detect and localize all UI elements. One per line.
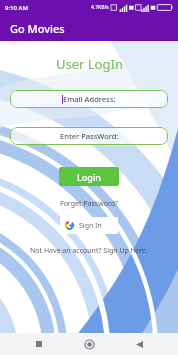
- button[interactable]: Recent apps: [28, 333, 50, 355]
- staticText: Not Have an account? Sign Up here.: [30, 246, 148, 256]
- staticText: Sign In: [79, 221, 102, 231]
- staticText: Go Movies: [10, 21, 65, 36]
- staticText: 9:10 AM: [5, 4, 28, 12]
- button[interactable]: Home: [78, 333, 100, 355]
- staticText: Enter PassWord:: [60, 131, 119, 141]
- staticText: User LogIn: [56, 55, 123, 73]
- staticText: Login: [77, 171, 101, 183]
- button[interactable]: Enter PassWord:: [10, 127, 168, 145]
- staticText: Email Address:: [63, 94, 116, 104]
- button[interactable]: Sign In: [60, 217, 118, 234]
- staticText: Forget Password?: [60, 199, 118, 209]
- button[interactable]: Email Address:: [10, 90, 168, 108]
- button[interactable]: Not Have an account? Sign Up here.: [26, 245, 152, 257]
- button[interactable]: Forget Password?: [56, 198, 122, 210]
- button[interactable]: Login: [59, 167, 119, 186]
- button[interactable]: Back: [128, 333, 150, 355]
- staticText: 4.7KB/s: [91, 4, 109, 11]
